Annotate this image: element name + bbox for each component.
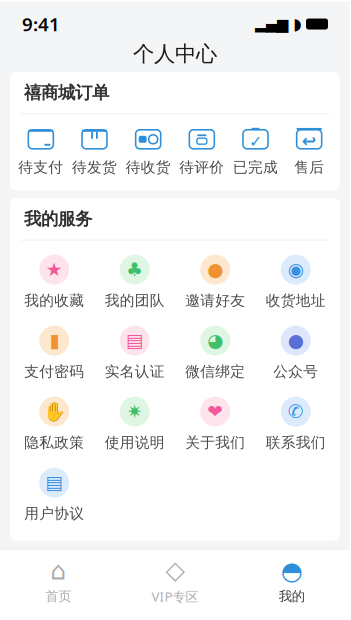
- staticText: ▤: [45, 472, 63, 493]
- staticText: 用户协议: [24, 505, 84, 523]
- staticText: 售后: [294, 158, 324, 176]
- staticText: 我的团队: [105, 292, 165, 310]
- button[interactable]: ▤: [94, 326, 175, 381]
- button[interactable]: ▮: [14, 326, 94, 381]
- button[interactable]: ✋: [14, 397, 94, 452]
- staticText: ↩: [302, 131, 317, 151]
- staticText: ▤: [126, 330, 144, 351]
- staticText: 支付密码: [24, 363, 84, 381]
- button[interactable]: 待支付: [14, 124, 68, 178]
- button[interactable]: ★: [14, 255, 94, 310]
- staticText: ◓: [281, 556, 303, 585]
- button[interactable]: ⌂: [0, 550, 117, 604]
- staticText: 实名认证: [105, 363, 165, 381]
- button[interactable]: ✆: [255, 397, 336, 452]
- staticText: ⌂: [50, 556, 66, 585]
- staticText: 首页: [45, 588, 71, 604]
- staticText: 关于我们: [185, 434, 245, 452]
- staticText: 微信绑定: [185, 363, 245, 381]
- staticText: ◕: [207, 330, 223, 351]
- staticText: 个人中心: [133, 41, 217, 67]
- staticText: 待收货: [126, 158, 171, 176]
- staticText: ▂▄▆: [255, 16, 288, 32]
- staticText: ✷: [127, 401, 143, 422]
- button[interactable]: ●: [255, 326, 336, 381]
- staticText: 我的服务: [24, 208, 92, 230]
- staticText: 待发货: [72, 158, 117, 176]
- staticText: ✋: [43, 401, 66, 422]
- button[interactable]: ◇: [117, 550, 233, 605]
- staticText: ●: [207, 259, 223, 280]
- button[interactable]: ▤: [14, 468, 94, 523]
- staticText: ◗: [293, 15, 301, 33]
- staticText: ✓: [249, 133, 262, 151]
- button[interactable]: ✷: [94, 397, 175, 452]
- staticText: ●: [288, 330, 304, 351]
- button[interactable]: ◉: [255, 255, 336, 310]
- button[interactable]: 待发货: [68, 124, 121, 178]
- staticText: 隐私政策: [24, 434, 84, 452]
- staticText: 已完成: [233, 158, 278, 176]
- staticText: ◉: [288, 259, 304, 280]
- staticText: 收货地址: [266, 292, 326, 310]
- staticText: 公众号: [273, 363, 318, 381]
- staticText: 使用说明: [105, 434, 165, 452]
- staticText: 我的收藏: [24, 292, 84, 310]
- button[interactable]: 待评价: [175, 124, 229, 178]
- button[interactable]: ●: [175, 255, 255, 310]
- staticText: 联系我们: [266, 434, 326, 452]
- staticText: ♣: [126, 259, 143, 280]
- button[interactable]: ◕: [175, 326, 255, 381]
- staticText: 我的: [279, 588, 305, 604]
- staticText: ◇: [165, 556, 184, 584]
- staticText: 禧商城订单: [24, 82, 109, 103]
- button[interactable]: ❤: [175, 397, 255, 452]
- button[interactable]: ◓: [233, 550, 350, 604]
- staticText: ✆: [288, 401, 304, 422]
- button[interactable]: ✓: [229, 124, 282, 178]
- button[interactable]: ↩: [282, 124, 336, 178]
- staticText: ★: [46, 259, 63, 280]
- button[interactable]: ♣: [94, 255, 175, 310]
- staticText: 9:41: [22, 12, 60, 36]
- staticText: 待评价: [179, 158, 224, 176]
- staticText: ❤: [207, 401, 223, 422]
- staticText: ▮: [49, 330, 59, 351]
- button[interactable]: 待收货: [121, 124, 175, 178]
- staticText: 邀请好友: [185, 292, 245, 310]
- staticText: 待支付: [18, 158, 63, 176]
- staticText: VIP专区: [151, 587, 198, 605]
